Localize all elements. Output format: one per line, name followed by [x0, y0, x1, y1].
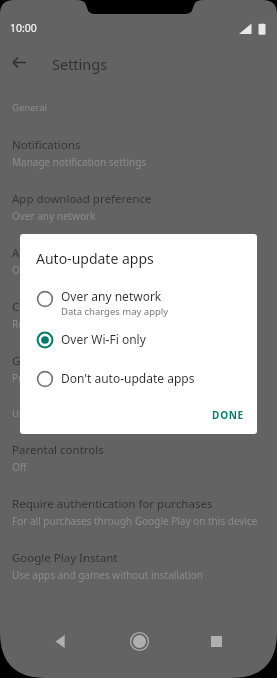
staticText: Require authentication for purchases: [12, 496, 213, 512]
button[interactable]: Require authentication for purchases: [0, 474, 277, 528]
staticText: For all purchases through Google Play on…: [12, 514, 258, 528]
staticText: DONE: [212, 408, 244, 422]
staticText: Notifications: [12, 137, 81, 153]
staticText: Google Play Protect: [12, 353, 118, 369]
button[interactable]: Notifications: [0, 114, 277, 169]
staticText: Over any network: [12, 209, 96, 223]
staticText: Manage notification settings: [12, 155, 147, 169]
button[interactable]: Parental controls: [0, 420, 277, 474]
staticText: Over Wi-Fi only: [61, 331, 146, 347]
staticText: Protect your device from harmful: [12, 371, 168, 385]
button[interactable]: Recent apps: [204, 629, 228, 653]
staticText: Settings: [52, 54, 108, 74]
staticText: Auto-update apps: [12, 245, 109, 261]
button[interactable]: Back: [7, 50, 31, 74]
button[interactable]: Don't auto-update apps: [20, 366, 257, 392]
button[interactable]: Google Play Protect: [0, 331, 277, 385]
staticText: Over any network: [61, 288, 162, 304]
staticText: 10:00: [10, 21, 37, 35]
button[interactable]: Back: [48, 629, 72, 653]
staticText: Parental controls: [12, 442, 104, 458]
button[interactable]: Auto-update apps: [0, 223, 277, 277]
staticText: Use apps and games without installation: [12, 568, 203, 582]
staticText: Off: [12, 460, 27, 474]
button[interactable]: Over Wi-Fi only: [20, 327, 257, 353]
staticText: Remove all the searches you: [12, 317, 146, 331]
staticText: App download preference: [12, 191, 152, 207]
staticText: Google Play Instant: [12, 550, 118, 566]
staticText: Over Wi-Fi only: [12, 263, 83, 277]
button[interactable]: DONE: [205, 404, 251, 426]
button[interactable]: App download preference: [0, 169, 277, 223]
button[interactable]: Google Play Instant: [0, 528, 277, 582]
button[interactable]: Home: [127, 629, 151, 653]
staticText: Don't auto-update apps: [61, 370, 195, 386]
staticText: General: [12, 101, 48, 114]
staticText: Auto-update apps: [36, 249, 154, 268]
button[interactable]: Clear local search history: [0, 277, 277, 331]
staticText: User controls: [12, 407, 72, 420]
button[interactable]: Over any network: [20, 284, 257, 322]
staticText: Data charges may apply: [61, 305, 169, 318]
staticText: Clear local search history: [12, 299, 147, 315]
